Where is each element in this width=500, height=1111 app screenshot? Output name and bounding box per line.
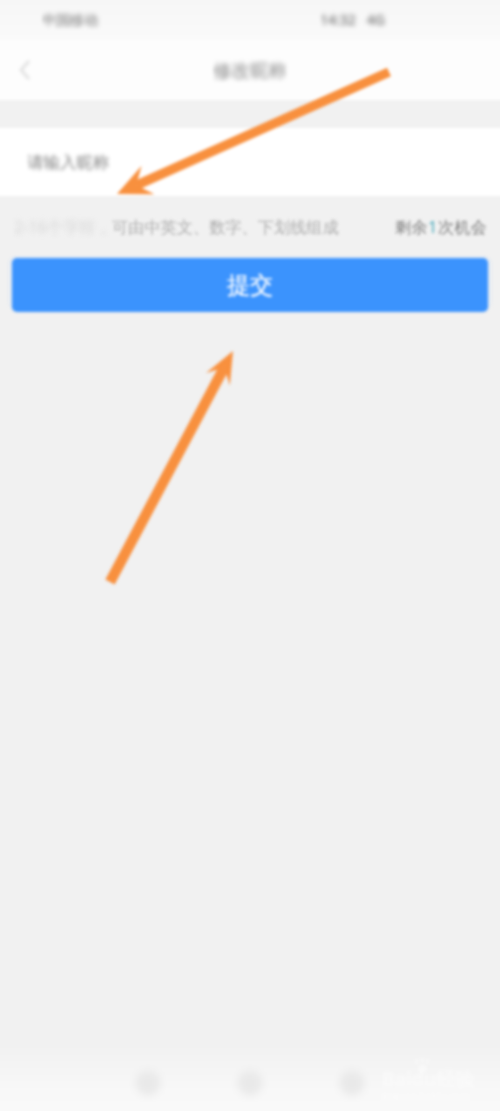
staticText: 请输入昵称 <box>27 152 110 173</box>
staticText: 剩余 <box>395 217 428 237</box>
staticText: 1 <box>428 216 438 238</box>
staticText: 提交 <box>227 271 273 300</box>
staticText: 中国移动 <box>42 10 106 29</box>
button[interactable]: Recents <box>322 1045 382 1111</box>
staticText: 14:32 4G <box>320 10 393 29</box>
staticText: 次机会 <box>438 217 487 237</box>
button[interactable]: 提交 <box>12 258 488 312</box>
button[interactable]: Back <box>118 1045 178 1111</box>
staticText: 可由中英文、数字、下划线组成 <box>112 217 339 237</box>
button[interactable]: Home <box>220 1045 280 1111</box>
staticText: 修改昵称 <box>213 59 287 82</box>
button[interactable]: Back <box>2 47 48 93</box>
